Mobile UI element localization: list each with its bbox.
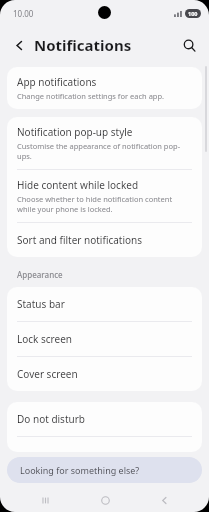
button[interactable]: Cover screen [7, 357, 202, 391]
staticText: Customise the appearance of notification… [17, 141, 192, 161]
staticText: Cover screen [17, 367, 78, 381]
staticText: Looking for something else? [20, 464, 140, 476]
staticText: Sort and filter notifications [17, 233, 143, 247]
staticText: 10.00 [13, 8, 34, 19]
staticText: Appearance [17, 269, 63, 280]
staticText: Choose whether to hide notification cont… [17, 194, 192, 214]
staticText: Change notification settings for each ap… [17, 91, 165, 101]
staticText: App notifications [17, 75, 97, 89]
staticText: Notification pop-up style [17, 125, 133, 139]
button[interactable]: Lock screen [7, 322, 202, 356]
staticText: Lock screen [17, 332, 73, 346]
staticText: Do not disturb [17, 412, 85, 426]
staticText: Status bar [17, 297, 65, 311]
button[interactable]: App notifications [7, 67, 202, 109]
button[interactable]: Home [91, 488, 119, 512]
button[interactable]: Looking for something else? [7, 457, 202, 483]
button[interactable]: Sort and filter notifications [7, 223, 202, 257]
staticText: Notifications [34, 35, 132, 55]
button[interactable]: Notification pop-up style [7, 117, 202, 169]
button[interactable]: Recents [31, 488, 59, 512]
button[interactable]: Hide content while locked [7, 170, 202, 222]
staticText: 100 [188, 10, 198, 17]
button[interactable]: Search [174, 30, 204, 60]
button[interactable]: Status bar [7, 287, 202, 321]
button[interactable]: Back [4, 30, 34, 60]
button[interactable]: Do not disturb [7, 402, 202, 436]
button[interactable]: Back [150, 488, 178, 512]
staticText: Hide content while locked [17, 178, 139, 192]
